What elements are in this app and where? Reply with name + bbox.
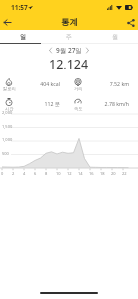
staticText: 일: [20, 33, 26, 41]
staticText: 14: [78, 171, 83, 176]
staticText: 22: [122, 171, 127, 176]
button[interactable]: Share: [123, 15, 138, 30]
staticText: 12,124: [49, 56, 89, 69]
staticText: 20: [111, 171, 116, 176]
staticText: 10: [56, 171, 61, 176]
staticText: 500: [2, 151, 9, 156]
staticText: 12: [67, 171, 72, 176]
staticText: 16: [89, 171, 94, 176]
staticText: 월: [112, 33, 118, 41]
staticText: 통계: [61, 17, 78, 28]
staticText: 2,000: [2, 110, 13, 115]
button[interactable]: 칼로리: [0, 78, 69, 96]
staticText: 시간: [5, 106, 14, 111]
staticText: 거리: [74, 86, 83, 91]
button[interactable]: 거리: [69, 78, 138, 96]
staticText: 112 분: [18, 100, 60, 107]
staticText: 9월 27일: [56, 46, 82, 55]
button[interactable]: 속도: [69, 98, 138, 116]
staticText: 1,000: [2, 137, 13, 142]
staticText: 7.52 km: [87, 80, 129, 87]
staticText: 404 kcal: [18, 80, 60, 87]
staticText: 4: [23, 171, 26, 176]
staticText: 11:57: [11, 3, 28, 12]
staticText: 속도: [74, 106, 83, 111]
staticText: 0: [1, 171, 4, 176]
button[interactable]: Back: [0, 15, 15, 30]
button[interactable]: Next day: [82, 45, 93, 56]
staticText: 6: [34, 171, 37, 176]
staticText: 칼로리: [3, 86, 16, 91]
button[interactable]: 일: [0, 30, 46, 44]
staticText: 1,500: [2, 124, 13, 129]
staticText: 2: [12, 171, 15, 176]
button[interactable]: 시간: [0, 98, 69, 116]
staticText: 18: [100, 171, 105, 176]
staticText: 8: [45, 171, 48, 176]
staticText: 주: [66, 33, 72, 41]
button[interactable]: Previous day: [45, 45, 56, 56]
button[interactable]: 주: [46, 30, 92, 44]
staticText: 2.78 km/h: [87, 100, 129, 107]
button[interactable]: 월: [92, 30, 138, 44]
